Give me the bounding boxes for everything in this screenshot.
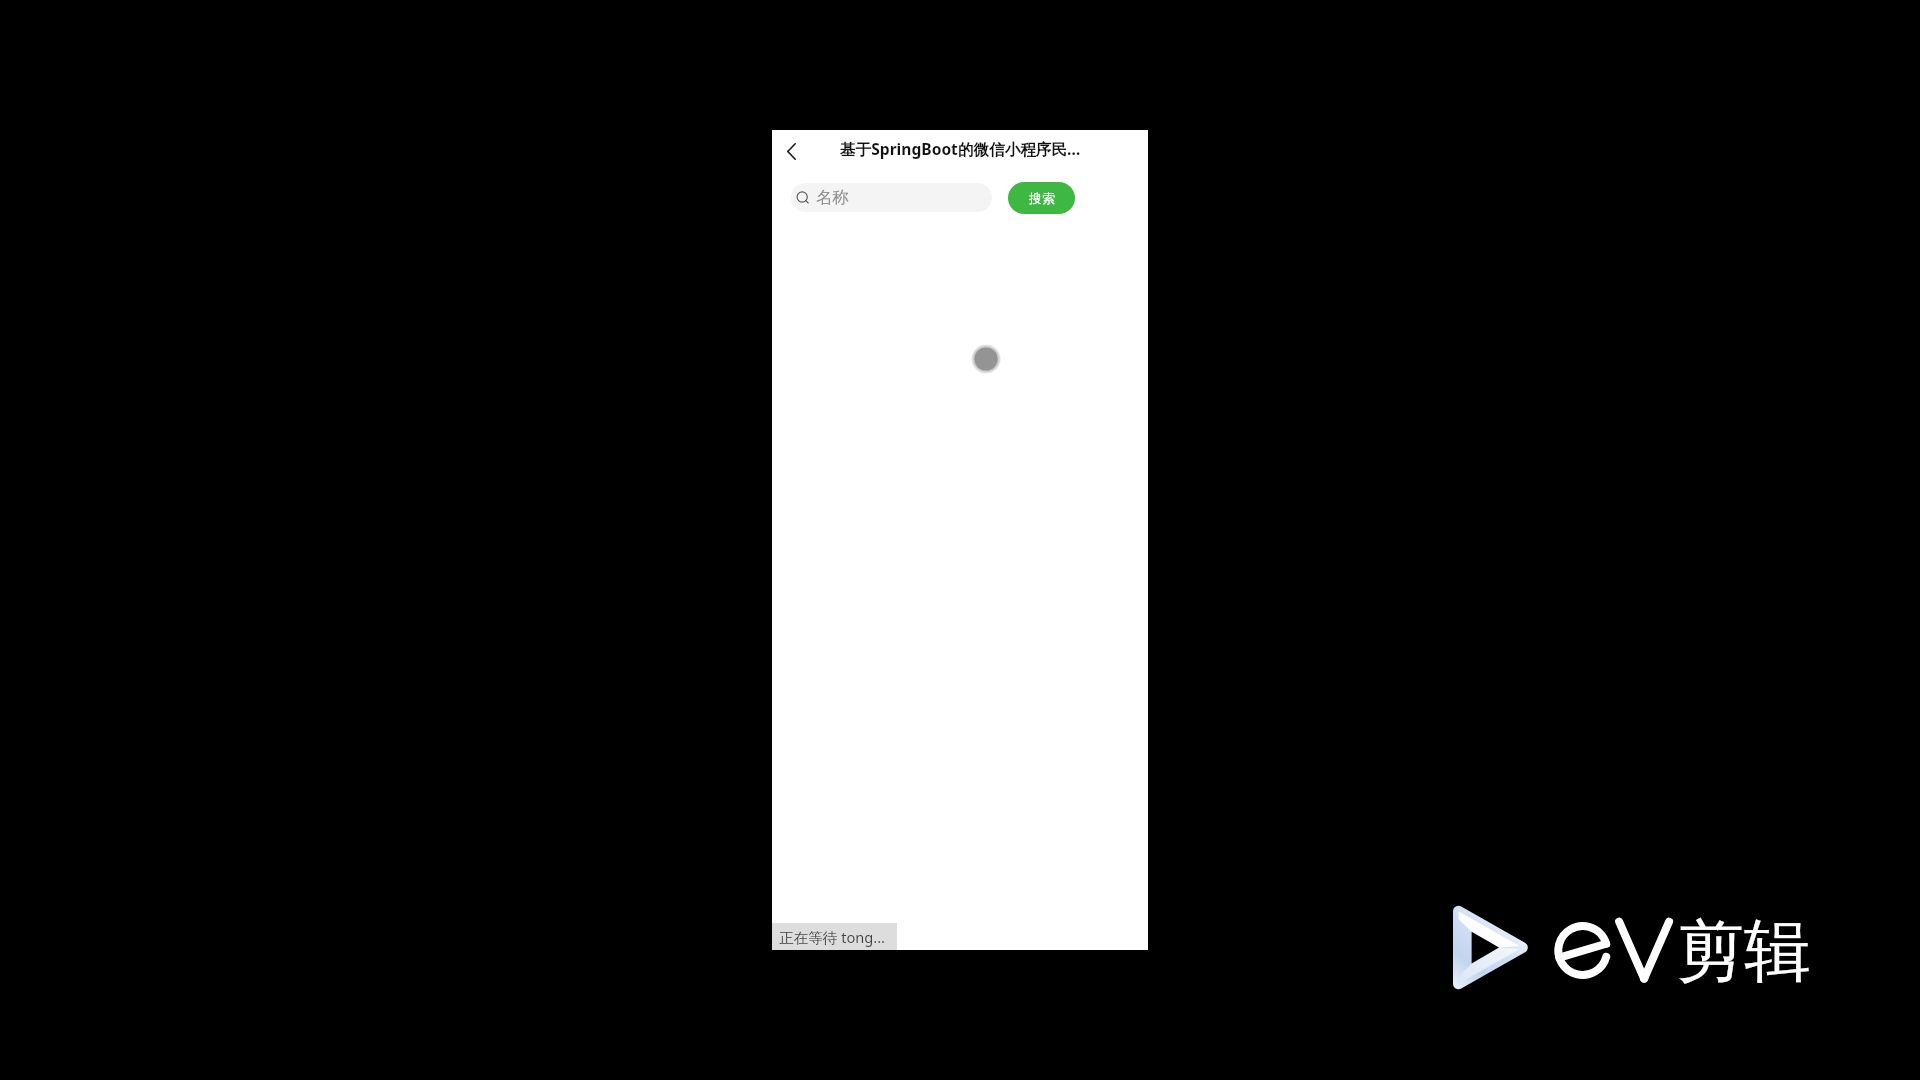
- button[interactable]: 搜索: [1008, 182, 1075, 214]
- staticText: 名称: [816, 187, 849, 208]
- staticText: 搜索: [1029, 190, 1055, 206]
- staticText: 剪辑: [1677, 909, 1811, 993]
- button[interactable]: 名称 search field: [791, 183, 992, 212]
- button[interactable]: Back: [776, 136, 806, 166]
- staticText: 正在等待 tong...: [779, 927, 885, 947]
- staticText: 基于SpringBoot的微信小程序民…: [840, 138, 1081, 159]
